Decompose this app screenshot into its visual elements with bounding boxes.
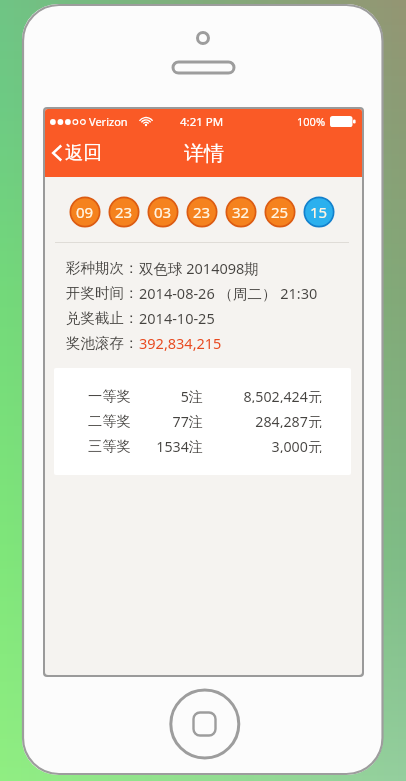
staticText: 03 [154,202,172,222]
button[interactable]: 23 [108,196,140,228]
staticText: 详情 [184,141,224,166]
button[interactable]: 23 [186,196,218,228]
staticText: 23 [115,202,133,222]
staticText: 32 [232,202,250,222]
staticText: 15 [310,202,328,222]
staticText: 2014-10-25 [139,308,215,328]
staticText: 开奖时间： [66,284,139,302]
staticText: 23 [193,202,211,222]
button[interactable]: Back [45,134,116,171]
staticText: 双色球 2014098期 [139,258,259,278]
button[interactable]: 15 [303,196,335,228]
staticText: 奖池滚存： [66,334,139,352]
staticText: 彩种期次： [66,259,139,277]
staticText: 25 [271,202,289,222]
other: Back [52,144,63,162]
staticText: 三等奖 [88,437,131,453]
staticText: 284,287元 [203,412,322,428]
button[interactable]: 09 [69,196,101,228]
staticText: 3,000元 [203,437,322,453]
staticText: 兑奖截止： [66,309,139,327]
staticText: 8,502,424元 [203,387,322,403]
staticText: 返回 [65,141,102,164]
staticText: 二等奖 [88,412,131,428]
staticText: 4:21 PM [180,114,224,130]
button[interactable]: 25 [264,196,296,228]
staticText: 1534注 [131,437,203,453]
staticText: 77注 [131,412,203,428]
staticText: 2014-08-26 （周二） 21:30 [139,283,318,303]
button[interactable]: 03 [147,196,179,228]
staticText: 392,834,215 [139,333,222,353]
staticText: 5注 [131,387,203,403]
button[interactable]: 32 [225,196,257,228]
button[interactable]: 一等奖 [54,368,351,475]
staticText: Verizon [89,114,128,129]
staticText: 100% [297,114,326,129]
staticText: 09 [76,202,94,222]
staticText: 一等奖 [88,387,131,403]
